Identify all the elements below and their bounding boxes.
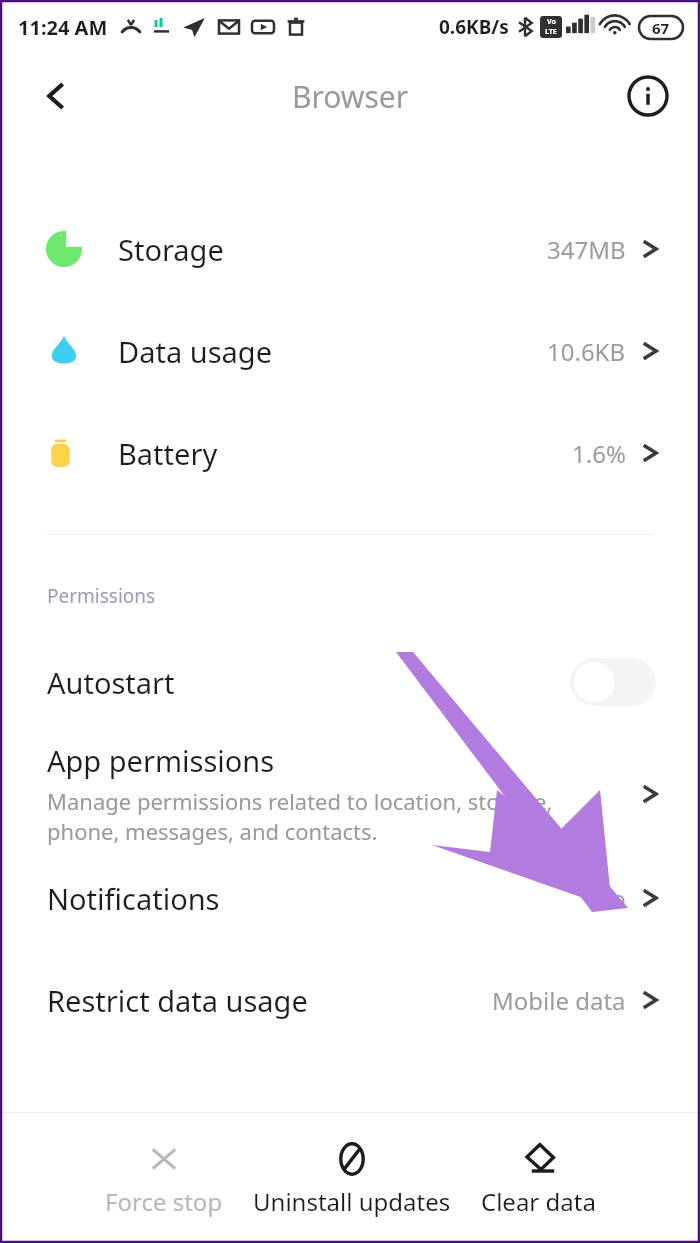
button[interactable]: Storage — [0, 226, 700, 272]
staticText: Storage — [118, 230, 224, 269]
staticText: Force stop — [105, 1185, 223, 1218]
staticText: App permissions — [47, 741, 275, 780]
staticText: 1.6% — [572, 437, 626, 470]
staticText: 347MB — [547, 233, 626, 266]
staticText: Data usage — [118, 332, 272, 371]
button[interactable]: Data usage — [0, 328, 700, 374]
staticText: 0.6KB/s — [439, 14, 509, 40]
button[interactable]: Notifications — [0, 870, 700, 926]
button[interactable]: Force stop — [99, 1133, 229, 1224]
staticText: Notifications — [47, 879, 220, 918]
staticText: Mobile data — [492, 984, 626, 1017]
staticText: 10.6KB — [547, 335, 626, 368]
staticText: Browser — [292, 76, 409, 117]
staticText: Manage permissions related to location, … — [47, 786, 553, 846]
staticText: Uninstall updates — [253, 1185, 451, 1218]
button[interactable]: App info — [622, 70, 674, 122]
staticText: Vo — [547, 17, 556, 27]
staticText: 11:24 AM — [18, 14, 108, 41]
button[interactable]: App permissions — [0, 735, 700, 852]
button[interactable]: Uninstall updates — [247, 1133, 457, 1224]
staticText: 67 — [652, 18, 670, 38]
staticText: No — [593, 882, 626, 915]
staticText: Clear data — [481, 1185, 596, 1218]
button[interactable]: Back — [28, 68, 84, 124]
staticText: Battery — [118, 434, 218, 473]
staticText: Autostart — [47, 663, 175, 702]
button[interactable]: Battery — [0, 430, 700, 476]
button[interactable]: Clear data — [475, 1133, 602, 1224]
button[interactable]: Autostart — [0, 649, 700, 715]
button[interactable]: Restrict data usage — [0, 972, 700, 1028]
staticText: Restrict data usage — [47, 981, 308, 1020]
staticText: Permissions — [47, 583, 156, 609]
staticText: LTE — [545, 27, 557, 37]
